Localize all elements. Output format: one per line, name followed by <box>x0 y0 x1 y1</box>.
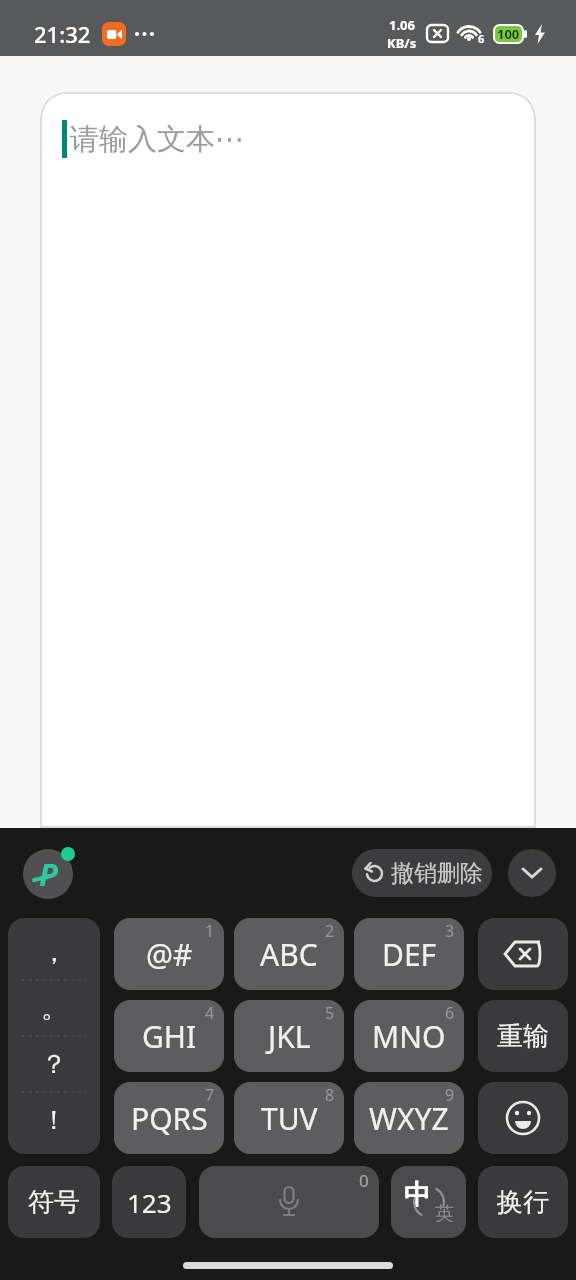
staticText: ， <box>41 936 67 969</box>
staticText: 5 <box>325 1002 335 1024</box>
button[interactable]: 符号 <box>8 1166 100 1238</box>
button[interactable]: 7 <box>114 1082 224 1154</box>
staticText: TUV <box>261 1098 318 1139</box>
button[interactable]: 3 <box>354 918 464 990</box>
staticText: 4 <box>205 1002 215 1024</box>
staticText: ！ <box>41 1104 67 1137</box>
button[interactable]: 1 <box>114 918 224 990</box>
button[interactable]: 换行 <box>478 1166 568 1238</box>
button[interactable] <box>478 918 568 990</box>
staticText: 100 <box>497 25 520 43</box>
button[interactable]: 重输 <box>478 1000 568 1072</box>
button[interactable]: 请输入文本⋯ <box>40 92 536 828</box>
staticText: PQRS <box>131 1098 208 1139</box>
staticText: 7 <box>205 1084 215 1106</box>
button[interactable]: 2 <box>234 918 344 990</box>
button[interactable]: 123 <box>112 1166 186 1238</box>
button[interactable] <box>508 849 556 897</box>
staticText: 8 <box>325 1084 335 1106</box>
staticText: 3 <box>445 920 455 942</box>
staticText: 9 <box>445 1084 455 1106</box>
staticText: 0 <box>359 1169 369 1192</box>
staticText: 1 <box>205 920 215 942</box>
button[interactable]: 撤销删除 <box>352 849 492 897</box>
staticText: 2 <box>325 920 335 942</box>
staticText: @# <box>146 934 193 975</box>
staticText: GHI <box>142 1016 197 1057</box>
staticText: DEF <box>382 934 437 975</box>
staticText: 21:32 <box>34 19 91 49</box>
staticText: 中 <box>404 1178 431 1212</box>
button[interactable]: 4 <box>114 1000 224 1072</box>
staticText: 符号 <box>28 1186 80 1219</box>
staticText: P <box>39 853 58 895</box>
button[interactable]: 9 <box>354 1082 464 1154</box>
staticText: ？ <box>41 1048 67 1081</box>
staticText: 1.06 <box>389 16 415 34</box>
staticText: 请输入文本⋯ <box>70 121 244 158</box>
button[interactable]: 5 <box>234 1000 344 1072</box>
staticText: MNO <box>372 1016 446 1057</box>
button[interactable] <box>478 1082 568 1154</box>
staticText: 重输 <box>497 1020 549 1053</box>
button[interactable]: ， <box>8 918 100 1154</box>
staticText: WXYZ <box>369 1098 449 1139</box>
staticText: JKL <box>268 1016 311 1057</box>
staticText: 6 <box>445 1002 455 1024</box>
staticText: 。 <box>41 992 67 1025</box>
button[interactable]: 中 <box>391 1166 466 1238</box>
staticText: 123 <box>127 1185 172 1220</box>
button[interactable]: P <box>23 847 75 899</box>
staticText: 6 <box>478 31 485 46</box>
button[interactable]: 0 <box>199 1166 379 1238</box>
staticText: 英 <box>435 1202 454 1226</box>
button[interactable]: 8 <box>234 1082 344 1154</box>
staticText: KB/s <box>387 34 417 52</box>
staticText: 撤销删除 <box>391 859 483 888</box>
button[interactable]: 6 <box>354 1000 464 1072</box>
staticText: ABC <box>260 934 318 975</box>
staticText: 换行 <box>497 1186 549 1219</box>
